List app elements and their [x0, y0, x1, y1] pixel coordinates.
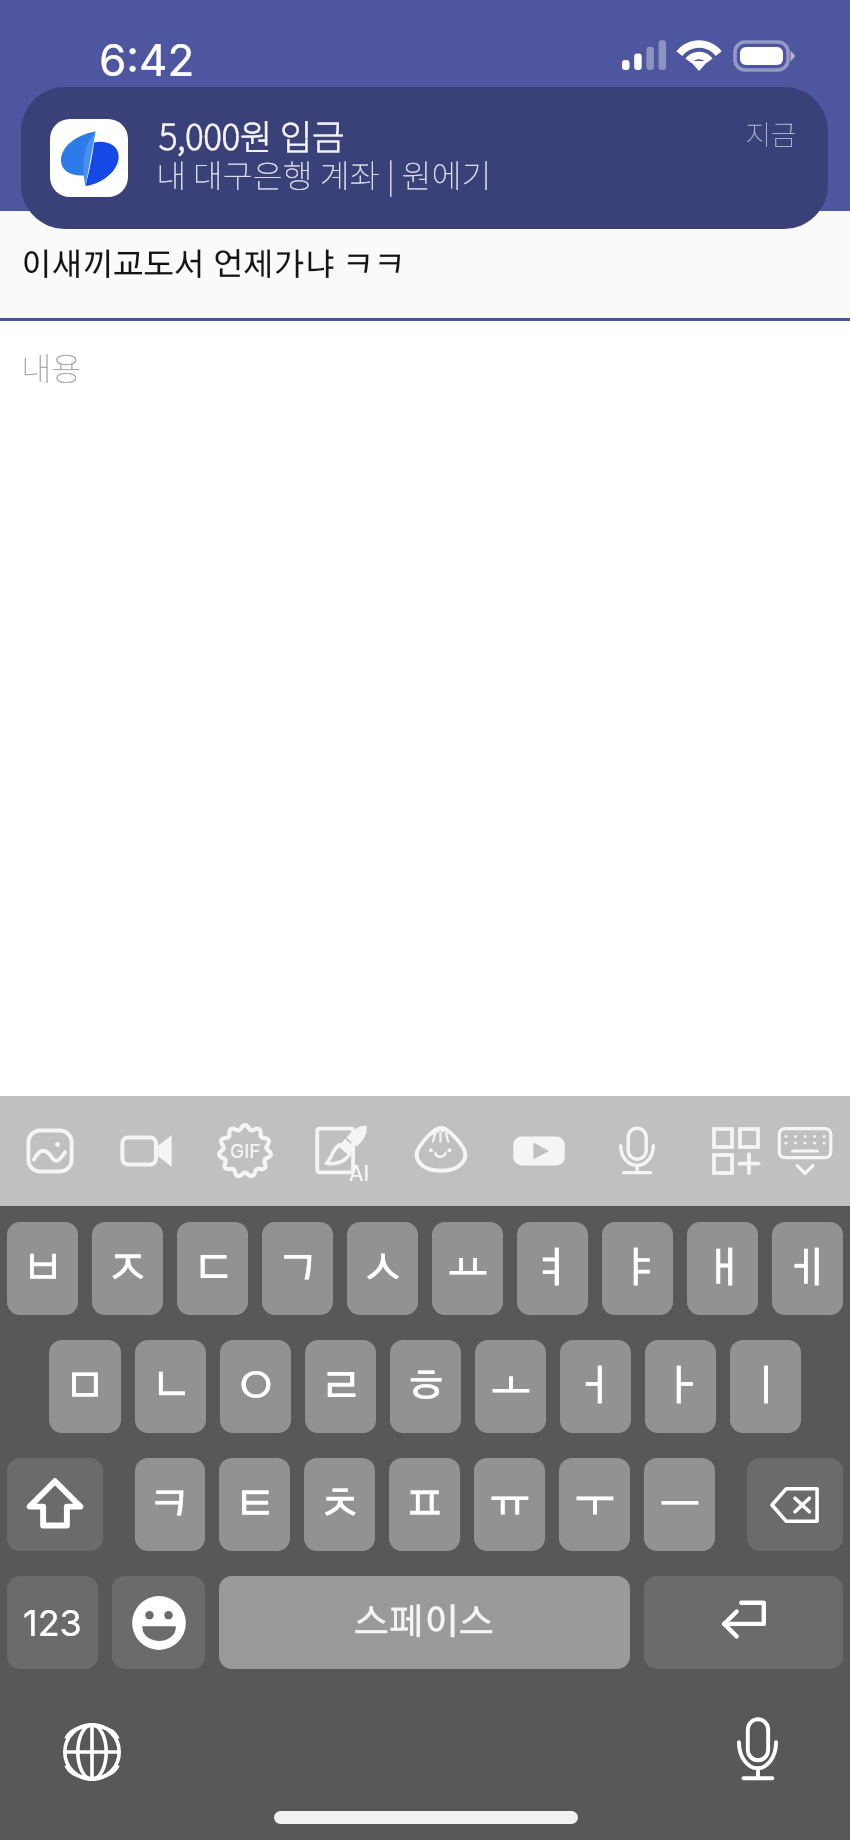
- staticText: ㅡ: [659, 1484, 701, 1526]
- button[interactable]: More apps: [693, 1108, 779, 1194]
- button[interactable]: ㅅ: [347, 1222, 418, 1315]
- button[interactable]: ㄱ: [262, 1222, 333, 1315]
- staticText: ㅋ: [149, 1484, 191, 1526]
- staticText: ㅍ: [404, 1484, 446, 1526]
- staticText: 5,000원 입금: [159, 109, 345, 160]
- staticText: GIF: [230, 1140, 261, 1163]
- staticText: ㅌ: [234, 1484, 276, 1526]
- button[interactable]: ㅑ: [602, 1222, 673, 1315]
- button[interactable]: ㅓ: [560, 1340, 631, 1433]
- staticText: ㅁ: [64, 1366, 106, 1408]
- staticText: ㅂ: [22, 1248, 64, 1290]
- button[interactable]: ㅠ: [474, 1458, 545, 1551]
- staticText: ㅐ: [702, 1248, 744, 1290]
- staticText: ㅣ: [745, 1366, 787, 1408]
- staticText: ㄴ: [150, 1366, 192, 1408]
- staticText: 6:42: [99, 33, 195, 86]
- staticText: ㅊ: [319, 1484, 361, 1526]
- staticText: ㅕ: [532, 1248, 574, 1290]
- staticText: AI: [349, 1161, 370, 1186]
- button[interactable]: AI drawing: [300, 1108, 386, 1194]
- staticText: 지금: [745, 113, 797, 154]
- button[interactable]: ㅍ: [389, 1458, 460, 1551]
- button[interactable]: ㅣ: [730, 1340, 801, 1433]
- staticText: ㅎ: [405, 1366, 447, 1408]
- button[interactable]: ㅕ: [517, 1222, 588, 1315]
- button[interactable]: Emoji: [112, 1576, 205, 1669]
- button[interactable]: ㄷ: [177, 1222, 248, 1315]
- button[interactable]: ㅈ: [92, 1222, 163, 1315]
- staticText: ㄱ: [277, 1248, 319, 1290]
- button[interactable]: 스페이스: [219, 1576, 630, 1669]
- staticText: ㅏ: [660, 1366, 702, 1408]
- button[interactable]: ㅇ: [220, 1340, 291, 1433]
- staticText: 내 대구은행 계좌 | 원에기: [156, 150, 492, 197]
- staticText: ㄷ: [192, 1248, 234, 1290]
- button[interactable]: Video: [104, 1108, 190, 1194]
- staticText: ㅔ: [787, 1248, 829, 1290]
- button[interactable]: ㄹ: [305, 1340, 376, 1433]
- button[interactable]: ㅛ: [432, 1222, 503, 1315]
- staticText: 123: [23, 1601, 82, 1645]
- staticText: ㅑ: [617, 1248, 659, 1290]
- button[interactable]: ㅊ: [304, 1458, 375, 1551]
- staticText: ㄹ: [320, 1366, 362, 1408]
- button[interactable]: GIF: [202, 1108, 288, 1194]
- button[interactable]: ㅏ: [645, 1340, 716, 1433]
- button[interactable]: ㅗ: [475, 1340, 546, 1433]
- staticText: ㅗ: [490, 1366, 532, 1408]
- staticText: ㅅ: [362, 1248, 404, 1290]
- staticText: ㅈ: [107, 1248, 149, 1290]
- button[interactable]: Shift: [7, 1458, 103, 1551]
- staticText: ㅜ: [574, 1484, 616, 1526]
- staticText: 스페이스: [354, 1605, 495, 1641]
- button[interactable]: 5,000원 입금: [21, 87, 828, 229]
- button[interactable]: ㄴ: [135, 1340, 206, 1433]
- button[interactable]: Change keyboard language: [49, 1709, 135, 1795]
- button[interactable]: Enter: [644, 1576, 843, 1669]
- button[interactable]: 123: [7, 1576, 98, 1669]
- button[interactable]: Sticker: [398, 1108, 484, 1194]
- staticText: ㅇ: [235, 1366, 277, 1408]
- staticText: ㅓ: [575, 1366, 617, 1408]
- staticText: 이새끼교도서 언제가냐 ㅋㅋ: [21, 250, 406, 282]
- staticText: 내용: [21, 343, 82, 391]
- button[interactable]: ㅐ: [687, 1222, 758, 1315]
- button[interactable]: YouTube: [496, 1108, 582, 1194]
- button[interactable]: ㅡ: [644, 1458, 715, 1551]
- button[interactable]: ㅁ: [49, 1340, 121, 1433]
- button[interactable]: ㅎ: [390, 1340, 461, 1433]
- button[interactable]: Backspace: [747, 1458, 843, 1551]
- button[interactable]: Photos: [7, 1108, 93, 1194]
- button[interactable]: Voice input: [714, 1707, 800, 1793]
- button[interactable]: ㅌ: [219, 1458, 290, 1551]
- staticText: ㅠ: [489, 1484, 531, 1526]
- button[interactable]: Keyboard settings: [762, 1108, 848, 1194]
- button[interactable]: ㅂ: [7, 1222, 78, 1315]
- button[interactable]: ㅋ: [135, 1458, 205, 1551]
- button[interactable]: ㅔ: [772, 1222, 843, 1315]
- button[interactable]: Voice input: [594, 1108, 680, 1194]
- staticText: ㅛ: [447, 1248, 489, 1290]
- button[interactable]: ㅜ: [559, 1458, 630, 1551]
